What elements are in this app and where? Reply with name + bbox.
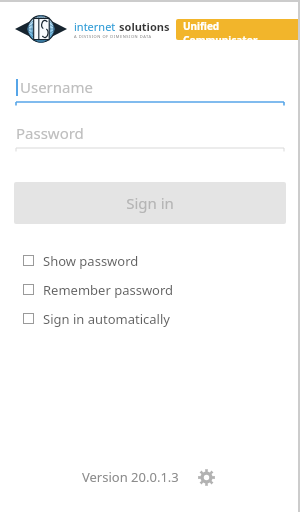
staticText: Sign in automatically bbox=[43, 310, 170, 328]
button[interactable]: Unified Communicator bbox=[176, 19, 300, 40]
staticText: solutions bbox=[119, 19, 170, 34]
staticText: A DIVISION OF DIMENSION DATA bbox=[74, 34, 152, 39]
button[interactable]: Settings bbox=[193, 464, 219, 490]
staticText: Sign in bbox=[126, 193, 174, 213]
staticText: internet bbox=[74, 19, 116, 34]
staticText: Password bbox=[16, 123, 84, 143]
staticText: Version 20.0.1.3 bbox=[82, 468, 179, 486]
staticText: Unified Communicator bbox=[183, 19, 293, 40]
button[interactable]: Remember password bbox=[0, 275, 300, 304]
button[interactable]: Sign in automatically bbox=[0, 304, 300, 333]
button[interactable]: Sign in bbox=[14, 182, 286, 224]
staticText: Show password bbox=[43, 252, 139, 270]
button[interactable]: Show password bbox=[0, 246, 300, 275]
button[interactable]: Username bbox=[0, 76, 300, 106]
staticText: Remember password bbox=[43, 281, 174, 299]
button[interactable]: Password bbox=[0, 122, 300, 152]
staticText: Username bbox=[20, 77, 93, 97]
